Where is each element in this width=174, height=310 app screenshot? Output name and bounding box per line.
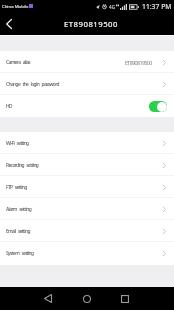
staticText: Change the login password bbox=[6, 81, 59, 88]
button[interactable]: Camera alias bbox=[0, 51, 174, 73]
staticText: HD bbox=[6, 103, 12, 110]
button[interactable]: Wi-Fi setting bbox=[0, 132, 174, 154]
button[interactable]: Home bbox=[73, 287, 101, 310]
staticText: ET890819500 bbox=[64, 19, 118, 30]
button[interactable]: Recent apps bbox=[111, 287, 139, 310]
button[interactable]: System setting bbox=[0, 242, 174, 265]
button[interactable]: Alarm setting bbox=[0, 198, 174, 220]
button[interactable]: Back bbox=[34, 287, 62, 310]
button[interactable]: Change the login password bbox=[0, 73, 174, 95]
staticText: Alarm setting bbox=[6, 206, 32, 213]
staticText: 11:37 PM bbox=[142, 2, 172, 11]
button[interactable]: Recording setting bbox=[0, 154, 174, 176]
staticText: System setting bbox=[6, 250, 34, 257]
button[interactable]: Email setting bbox=[0, 220, 174, 242]
button[interactable]: Back bbox=[0, 12, 18, 35]
staticText: Camera alias bbox=[6, 59, 31, 66]
button[interactable]: FTP setting bbox=[0, 176, 174, 198]
staticText: ET890819500 bbox=[125, 59, 152, 66]
staticText: Wi-Fi setting bbox=[6, 140, 29, 147]
staticText: 4G bbox=[109, 4, 115, 10]
staticText: China Mobile bbox=[2, 3, 29, 9]
staticText: FTP setting bbox=[6, 184, 27, 191]
staticText: Email setting bbox=[6, 228, 30, 235]
button[interactable]: HD bbox=[0, 95, 174, 117]
staticText: Recording setting bbox=[6, 162, 39, 169]
